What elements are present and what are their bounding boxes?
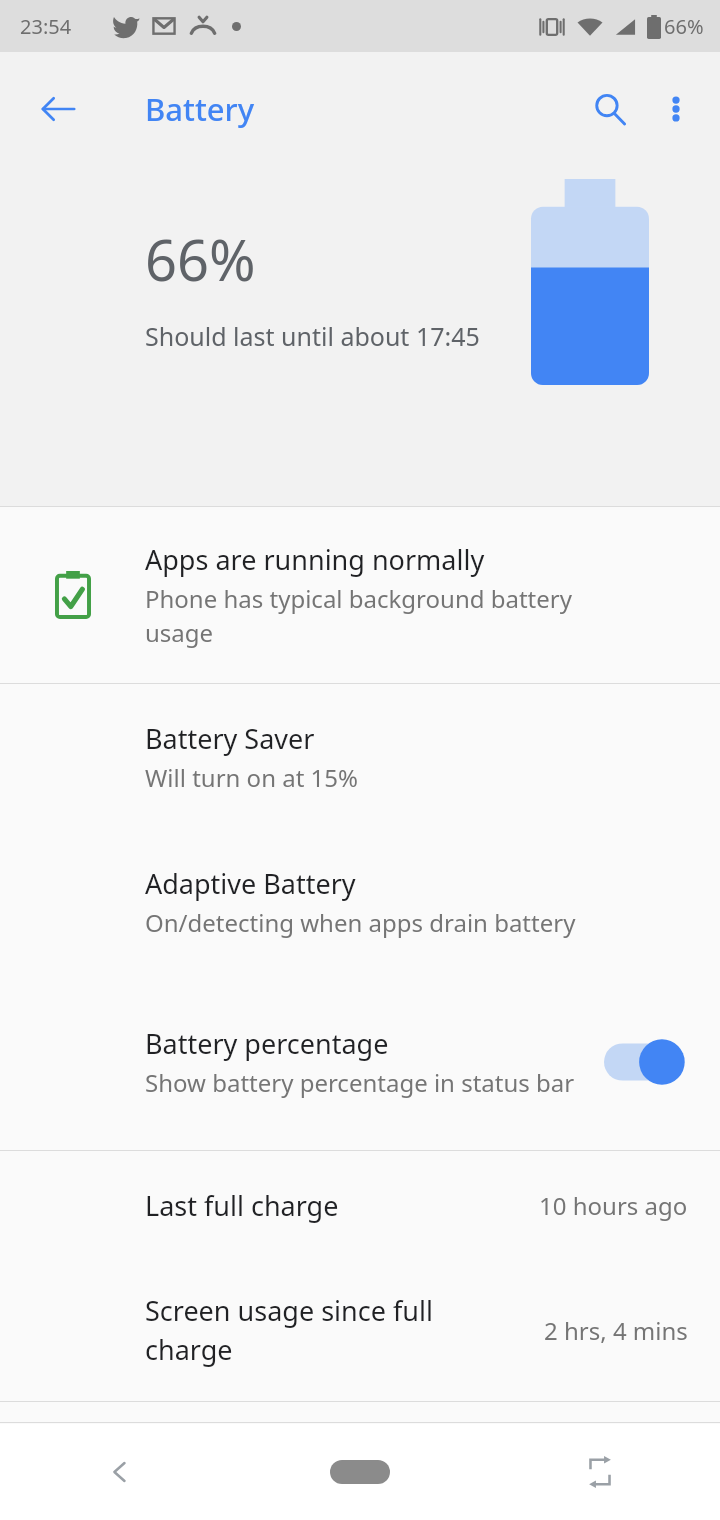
button[interactable]: Search	[576, 75, 644, 143]
button[interactable]: Screen usage since full charge	[0, 1259, 720, 1401]
staticText: Battery percentage	[145, 1025, 389, 1062]
staticText: 23:54	[20, 13, 72, 40]
button[interactable]: Back	[26, 77, 90, 141]
button[interactable]: Last full charge	[0, 1151, 720, 1259]
staticText: Phone has typical background battery usa…	[145, 582, 630, 649]
staticText: Apps are running normally	[145, 541, 485, 578]
staticText: Will turn on at 15%	[145, 761, 358, 794]
button[interactable]: Apps are running normally	[0, 507, 720, 683]
staticText: Last full charge	[145, 1187, 339, 1224]
button[interactable]: Adaptive Battery	[0, 829, 720, 974]
staticText: Battery Saver	[145, 720, 315, 757]
staticText: Battery	[145, 88, 255, 130]
staticText: Screen usage since full charge	[145, 1292, 433, 1368]
staticText: 2 hrs, 4 mins	[544, 1314, 688, 1347]
staticText: On/detecting when apps drain battery	[145, 906, 576, 939]
button[interactable]: Battery Saver	[0, 684, 720, 829]
staticText: 66%	[664, 13, 704, 40]
staticText: 66%	[145, 221, 256, 297]
staticText: Should last until about 17:45	[145, 319, 480, 353]
button[interactable]: More options	[644, 77, 708, 141]
button[interactable]: Rotate screen	[480, 1424, 720, 1520]
button[interactable]: Back	[0, 1424, 240, 1520]
staticText: 10 hours ago	[539, 1189, 688, 1222]
button[interactable]: Battery percentage	[0, 974, 720, 1150]
staticText: Adaptive Battery	[145, 865, 356, 902]
button[interactable]: Home	[240, 1424, 480, 1520]
button[interactable]: Battery percentage toggle, on	[600, 1032, 686, 1092]
staticText: Show battery percentage in status bar	[145, 1066, 575, 1099]
